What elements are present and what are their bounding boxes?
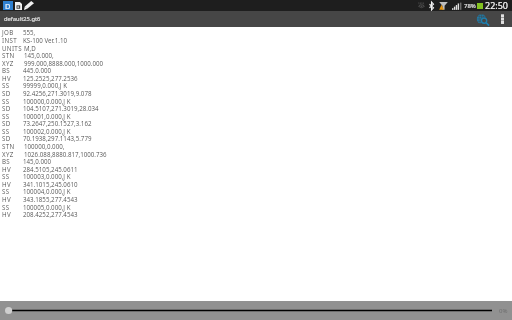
staticText: SS	[2, 172, 10, 180]
staticText: 73.2647,250.1527,3.162	[23, 119, 92, 127]
staticText: 445.0.000	[23, 66, 52, 74]
staticText: 284.5105,245.0611	[23, 165, 78, 173]
staticText: 1026.088,8880.817,1000.736	[24, 150, 107, 158]
staticText: default25.gt6	[4, 15, 41, 23]
button[interactable]: More options	[497, 11, 507, 27]
staticText: SD	[2, 89, 11, 97]
staticText: 555,	[23, 28, 36, 36]
staticText: 343.1855,277.4543	[23, 195, 78, 203]
staticText: SD	[2, 104, 11, 112]
staticText: SS	[2, 97, 10, 105]
staticText: SS	[2, 127, 10, 135]
staticText: SD	[2, 134, 11, 142]
staticText: M,D	[24, 44, 36, 52]
staticText: 208.4252,277.4543	[23, 210, 78, 218]
staticText: 100001,0.000,J K	[23, 112, 71, 120]
staticText: 0%	[499, 307, 508, 315]
staticText: 22:50	[485, 0, 509, 10]
staticText: 78%	[464, 2, 476, 10]
staticText: 70.1938,297.1143,5.779	[23, 134, 92, 142]
staticText: KS-100 Ver.1.10	[23, 36, 68, 44]
staticText: SS	[2, 112, 10, 120]
staticText: 100003,0.000,J K	[23, 172, 71, 180]
button[interactable]: Progress slider	[0, 301, 512, 320]
staticText: HV	[2, 180, 11, 188]
staticText: 100000,0.000,	[24, 142, 65, 150]
staticText: 100004,0.000,J K	[23, 187, 71, 195]
staticText: 100002,0.000,J K	[23, 127, 71, 135]
staticText: SD	[2, 119, 11, 127]
staticText: HV	[2, 210, 11, 218]
staticText: HV	[2, 165, 11, 173]
staticText: 999.000,8888.000,1000.000	[24, 59, 104, 67]
staticText: HV	[2, 195, 11, 203]
staticText: INST	[2, 36, 18, 44]
staticText: SS	[2, 81, 10, 89]
staticText: 100000,0.000,J K	[23, 97, 71, 105]
staticText: 341.1015,245.0610	[23, 180, 78, 188]
staticText: BS	[2, 66, 11, 74]
staticText: 92.4256,271.3019,9.078	[23, 89, 92, 97]
staticText: XYZ	[2, 150, 14, 158]
staticText: 145,0.000	[23, 157, 52, 165]
staticText: D	[5, 1, 11, 10]
staticText: BS	[2, 157, 11, 165]
staticText: STN	[2, 51, 15, 59]
staticText: 99999,0.000,J K	[23, 81, 67, 89]
staticText: XYZ	[2, 59, 14, 67]
staticText: UNITS	[2, 44, 22, 52]
staticText: 104.5107,271.3019,28.034	[23, 104, 99, 112]
staticText: JOB	[2, 28, 14, 36]
staticText: SS	[2, 203, 10, 211]
staticText: STN	[2, 142, 15, 150]
staticText: 125.2525,277.2536	[23, 74, 78, 82]
staticText: 145,0.000,	[24, 51, 54, 59]
staticText: 100005,0.000,J K	[23, 203, 71, 211]
staticText: SS	[2, 187, 10, 195]
button[interactable]: Search	[474, 11, 490, 27]
staticText: HV	[2, 74, 11, 82]
